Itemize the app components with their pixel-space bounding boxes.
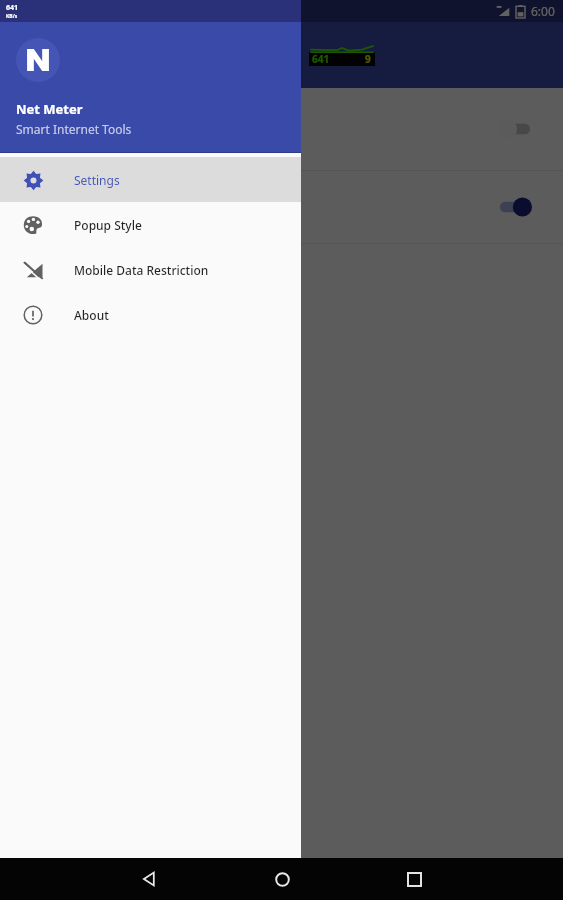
button[interactable]: Settings (0, 157, 301, 202)
button[interactable]: Recent apps (391, 858, 437, 900)
staticText: Smart Internet Tools (16, 121, 132, 137)
button[interactable]: Network speed popup (309, 45, 375, 66)
button[interactable]: Close navigation drawer (301, 0, 563, 858)
button[interactable] (0, 171, 563, 243)
button[interactable]: Back (126, 858, 172, 900)
button[interactable]: Mobile Data Restriction (0, 247, 301, 292)
staticText: Mobile Data Restriction (74, 262, 209, 278)
button[interactable]: About (0, 292, 301, 337)
staticText: About (74, 307, 109, 323)
staticText: Popup Style (74, 217, 142, 233)
staticText: 641 (6, 3, 19, 13)
staticText: 641 (312, 52, 330, 66)
staticText: 9 (365, 52, 371, 66)
staticText: Settings (74, 172, 120, 188)
staticText: 6:00 (531, 3, 555, 19)
button[interactable] (0, 88, 563, 170)
staticText: KB/s (6, 13, 18, 20)
button[interactable]: Popup Style (0, 202, 301, 247)
staticText: Net Meter (16, 100, 83, 118)
button[interactable]: Home (259, 858, 305, 900)
